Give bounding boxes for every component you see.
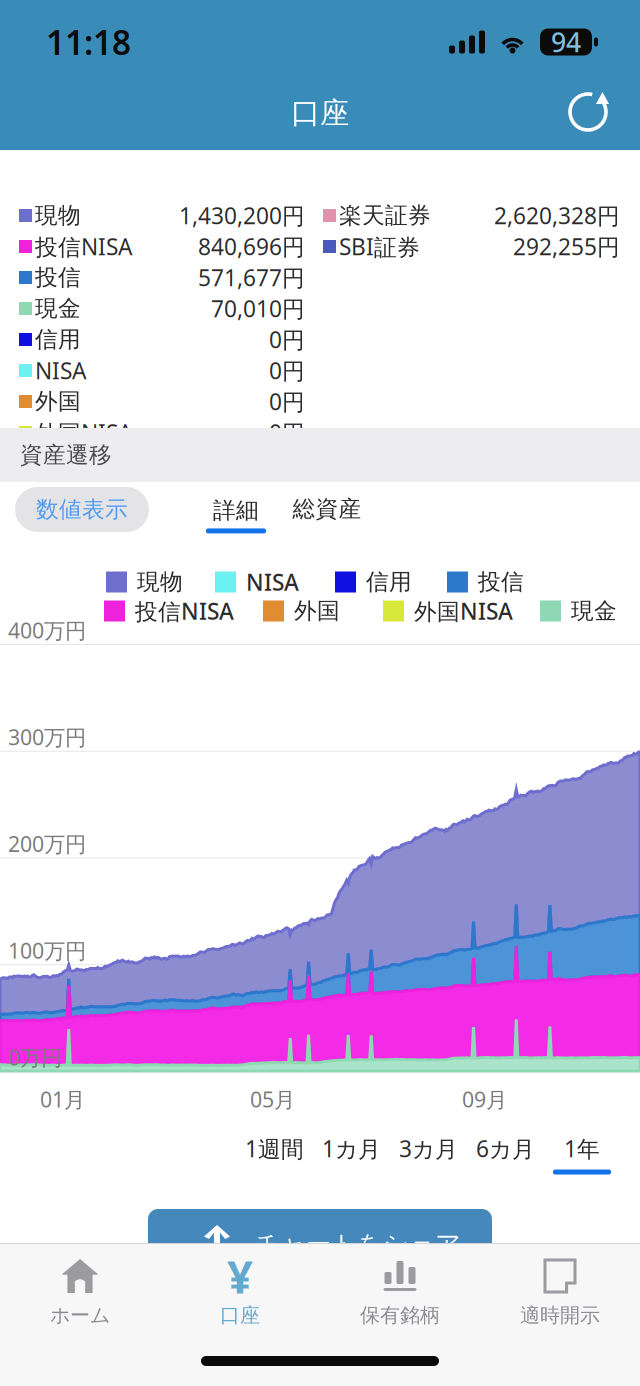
staticText: 292,255円	[513, 231, 620, 261]
button[interactable]: 数値表示	[15, 487, 149, 532]
staticText: 05月	[250, 1085, 295, 1113]
button[interactable]: 1カ月	[313, 1133, 390, 1174]
staticText: 投信NISA	[35, 231, 132, 261]
staticText: 09月	[462, 1085, 507, 1113]
staticText: 840,696円	[198, 231, 305, 261]
staticText: ホーム	[50, 1303, 110, 1328]
staticText: 94	[551, 24, 581, 60]
staticText: 現金	[35, 295, 81, 322]
staticText: NISA	[246, 567, 299, 597]
staticText: 投信	[35, 264, 81, 291]
staticText: 6カ月	[476, 1133, 535, 1163]
staticText: 0円	[269, 386, 305, 416]
staticText: 詳細	[213, 497, 259, 524]
button[interactable]: 1年	[544, 1133, 620, 1174]
staticText: 01月	[40, 1085, 85, 1113]
staticText: 1週間	[245, 1133, 304, 1163]
staticText: 数値表示	[36, 496, 128, 523]
staticText: 信用	[35, 326, 81, 353]
staticText: 口座	[291, 95, 349, 131]
staticText: 資産遷移	[20, 441, 112, 469]
staticText: 1カ月	[322, 1133, 381, 1163]
staticText: 571,677円	[198, 262, 305, 292]
staticText: 口座	[220, 1303, 260, 1328]
staticText: 300万円	[8, 723, 86, 751]
staticText: 信用	[366, 568, 412, 596]
staticText: 70,010円	[211, 293, 305, 323]
staticText: 外国NISA	[35, 417, 132, 447]
staticText: 11:18	[46, 20, 131, 64]
staticText: 現物	[137, 568, 183, 596]
staticText: 楽天証券	[339, 202, 431, 229]
staticText: 投信	[478, 568, 524, 596]
button[interactable]: 適時開示	[480, 1244, 640, 1337]
staticText: 100万円	[8, 936, 86, 964]
button[interactable]: チャートをシェア	[148, 1209, 492, 1283]
staticText: 適時開示	[520, 1303, 600, 1328]
button[interactable]: 6カ月	[467, 1133, 544, 1174]
staticText: 現金	[571, 597, 617, 625]
button[interactable]: 総資産	[272, 491, 382, 527]
staticText: 保有銘柄	[360, 1303, 440, 1328]
staticText: 投信NISA	[135, 596, 234, 626]
button[interactable]: 保有銘柄	[320, 1244, 480, 1337]
staticText: 現物	[35, 202, 81, 229]
staticText: 2,620,328円	[494, 200, 620, 230]
staticText: 400万円	[8, 616, 86, 644]
staticText: チャートをシェア	[254, 1229, 461, 1260]
staticText: 1年	[564, 1133, 600, 1163]
staticText: 0円	[269, 417, 305, 447]
staticText: 3カ月	[399, 1133, 458, 1163]
staticText: 1,430,200円	[179, 200, 305, 230]
staticText: 外国NISA	[414, 596, 513, 626]
staticText: SBI証券	[339, 231, 420, 262]
staticText: 0円	[269, 324, 305, 354]
button[interactable]: 詳細	[196, 491, 276, 539]
button[interactable]: 1週間	[236, 1133, 313, 1174]
staticText: ¥	[227, 1246, 253, 1306]
button[interactable]: ¥	[160, 1244, 320, 1337]
staticText: 0円	[269, 355, 305, 385]
button[interactable]: ホーム	[0, 1244, 160, 1337]
staticText: 外国	[294, 597, 340, 625]
staticText: 0万円	[8, 1043, 62, 1071]
button[interactable]: 3カ月	[390, 1133, 467, 1174]
button[interactable]: 更新	[566, 90, 610, 134]
staticText: 200万円	[8, 829, 86, 858]
staticText: NISA	[35, 355, 86, 385]
staticText: 総資産	[292, 495, 361, 523]
staticText: 外国	[35, 388, 81, 415]
